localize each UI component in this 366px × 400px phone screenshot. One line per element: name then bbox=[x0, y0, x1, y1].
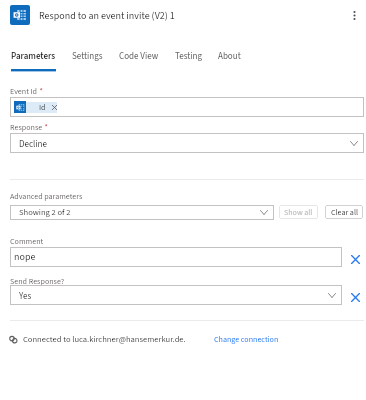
button[interactable]: Settings bbox=[64, 50, 111, 72]
staticText: Change connection bbox=[214, 334, 279, 345]
staticText: Showing 2 of 2 bbox=[19, 206, 71, 218]
staticText: * bbox=[38, 86, 43, 97]
staticText: Testing bbox=[175, 50, 202, 63]
button[interactable]: Parameters bbox=[3, 50, 64, 72]
button[interactable]: Response bbox=[10, 133, 364, 153]
staticText: Connected to luca.kirchner@hansemerkur.d… bbox=[23, 333, 186, 345]
staticText: Comment bbox=[10, 236, 44, 247]
button[interactable]: Testing bbox=[167, 50, 210, 72]
staticText: Show all bbox=[284, 207, 313, 218]
staticText: Settings bbox=[72, 50, 103, 63]
button[interactable]: Id bbox=[10, 97, 364, 117]
staticText: Event Id bbox=[10, 86, 38, 97]
staticText: Parameters bbox=[11, 50, 56, 63]
staticText: Send Response? bbox=[10, 276, 65, 287]
button[interactable]: About bbox=[210, 50, 249, 72]
button[interactable]: Send Response bbox=[10, 285, 342, 305]
staticText: Respond to an event invite (V2) 1 bbox=[39, 9, 175, 23]
button[interactable]: Change connection bbox=[214, 334, 279, 345]
button[interactable]: Show all bbox=[279, 205, 318, 219]
staticText: Clear all bbox=[331, 207, 358, 218]
staticText: Response bbox=[10, 122, 43, 133]
button[interactable]: Remove Comment bbox=[345, 249, 365, 269]
staticText: Advanced parameters bbox=[10, 191, 83, 202]
button[interactable]: nope bbox=[10, 247, 342, 267]
button[interactable]: Clear all bbox=[325, 205, 363, 219]
button[interactable]: Remove Send Response bbox=[345, 287, 365, 307]
button[interactable]: Code View bbox=[111, 50, 167, 72]
staticText: Yes bbox=[19, 290, 32, 303]
staticText: nope bbox=[14, 250, 36, 264]
staticText: * bbox=[43, 122, 48, 133]
button[interactable]: More options bbox=[342, 3, 366, 27]
staticText: Decline bbox=[19, 138, 47, 151]
staticText: About bbox=[218, 50, 241, 63]
staticText: Id bbox=[39, 102, 46, 113]
button[interactable]: Advanced parameters bbox=[10, 205, 274, 220]
staticText: Code View bbox=[119, 50, 159, 63]
